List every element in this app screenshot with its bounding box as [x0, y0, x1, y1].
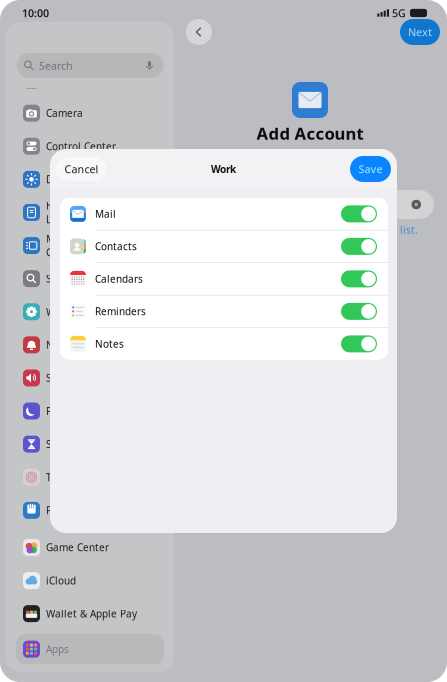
button[interactable]: Wallpaper: [16, 295, 164, 328]
staticText: Control Center: [46, 139, 116, 153]
button[interactable]: Display & Brightness: [16, 163, 164, 196]
button[interactable]: Wallet & Apple Pay: [16, 597, 164, 630]
staticText: Notes: [95, 337, 124, 351]
staticText: iCloud: [46, 574, 76, 587]
staticText: Apps: [46, 642, 69, 656]
staticText: Wallet & Apple Pay: [46, 607, 137, 620]
button[interactable]: Touch ID & Passcode: [16, 461, 164, 494]
staticText: Screen Time: [46, 437, 105, 451]
staticText: Game Center: [46, 541, 109, 554]
staticText: Add Account: [256, 122, 363, 145]
button[interactable]: Privacy & Security: [16, 494, 164, 527]
button[interactable]: Control Center: [16, 130, 164, 163]
button[interactable]: Camera: [16, 97, 164, 130]
button[interactable]: Focus: [16, 394, 164, 428]
staticText: Multitasking & Gestures: [46, 232, 116, 259]
staticText: Work: [211, 162, 236, 176]
staticText: Touch ID & Passcode: [46, 470, 145, 484]
button[interactable]: Search: [16, 262, 164, 295]
button[interactable]: Screen Time: [16, 428, 164, 461]
button[interactable]: Sounds: [16, 361, 164, 394]
staticText: Sounds: [46, 371, 80, 385]
staticText: Camera: [46, 106, 83, 120]
button[interactable]: Game Center: [16, 531, 164, 564]
button[interactable]: [16, 63, 164, 97]
staticText: Reminders: [95, 305, 146, 318]
staticText: Save: [358, 162, 382, 176]
staticText: Privacy & Security: [46, 503, 131, 517]
staticText: Focus: [46, 404, 73, 418]
button[interactable]: Home Screen & App Library: [16, 196, 164, 229]
button[interactable]: Notifications: [16, 328, 164, 361]
staticText: Mail: [95, 207, 116, 221]
button[interactable]: Toggle Mail: [341, 205, 377, 222]
staticText: list.: [400, 223, 418, 237]
button[interactable]: Save: [350, 156, 391, 182]
staticText: Search: [39, 58, 73, 73]
button[interactable]: Toggle Notes: [341, 335, 377, 352]
staticText: Wallpaper: [46, 305, 95, 318]
staticText: 10:00: [22, 6, 49, 20]
staticText: Display & Brightness: [46, 172, 146, 186]
staticText: Home Screen & App Library: [46, 199, 140, 226]
button[interactable]: Multitasking & Gestures: [16, 229, 164, 262]
button[interactable]: Toggle Reminders: [341, 303, 377, 320]
staticText: Next: [408, 25, 432, 39]
staticText: Search: [46, 272, 78, 285]
staticText: Calendars: [95, 272, 143, 286]
button[interactable]: Cancel: [56, 157, 107, 181]
button[interactable]: Next: [400, 19, 440, 45]
button[interactable]: iCloud: [16, 564, 164, 597]
staticText: Notifications: [46, 338, 108, 352]
staticText: Contacts: [95, 240, 137, 253]
staticText: 5G: [392, 6, 406, 20]
button[interactable]: Toggle Contacts: [341, 238, 377, 255]
button[interactable]: Apps: [16, 634, 164, 664]
staticText: Cancel: [64, 162, 98, 176]
button[interactable]: Toggle Calendars: [341, 270, 377, 287]
button[interactable]: Back: [186, 19, 212, 45]
